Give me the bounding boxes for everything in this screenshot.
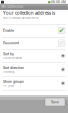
staticText: 08:08 AM — [51, 0, 66, 4]
staticText: ✔ — [59, 39, 65, 47]
staticText: Save — [51, 100, 59, 104]
staticText: http://s.mymusic.dk/mycollection — [3, 17, 38, 19]
staticText: Your collection address is — [3, 11, 55, 16]
button[interactable]: Enable — [0, 24, 68, 37]
button[interactable]: Save — [45, 98, 65, 106]
staticText: Password — [3, 41, 19, 45]
staticText: Collection number — [3, 57, 22, 60]
staticText: Descending — [3, 70, 14, 73]
staticText: Sort by — [3, 52, 14, 56]
staticText: My Collection — [1, 5, 23, 8]
staticText: All groups — [3, 84, 14, 87]
staticText: ✔ — [59, 27, 65, 34]
staticText: Sort direction — [3, 66, 24, 70]
button[interactable]: Show groups — [0, 76, 68, 90]
staticText: Enable — [3, 28, 14, 33]
button[interactable]: Password — [0, 37, 68, 49]
button[interactable]: Sort direction — [0, 62, 68, 76]
button[interactable]: Sort by — [0, 49, 68, 62]
staticText: Show groups — [3, 79, 24, 84]
